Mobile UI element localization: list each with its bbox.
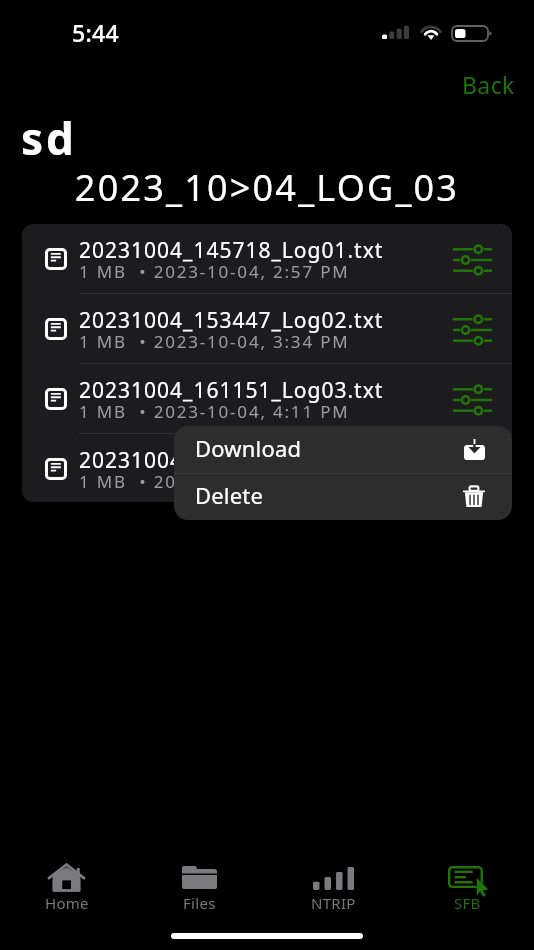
button[interactable]: File options: [446, 379, 498, 421]
staticText: 1 MB • 2023-10-04, 2:57 PM: [79, 260, 350, 283]
button[interactable]: 20231004_145718_Log01.txt: [22, 224, 512, 294]
button[interactable]: File options: [446, 449, 498, 491]
staticText: Home: [45, 893, 89, 913]
staticText: Files: [183, 893, 216, 913]
staticText: Download: [195, 433, 302, 463]
button[interactable]: 20231004_170245_Log04.txt: [22, 434, 512, 502]
staticText: Back: [462, 69, 515, 100]
staticText: 20231004_153447_Log02.txt: [79, 306, 384, 335]
button[interactable]: SFB: [400, 840, 534, 950]
staticText: sd: [21, 108, 77, 168]
button[interactable]: File options: [446, 239, 498, 281]
button[interactable]: Back: [448, 62, 528, 106]
staticText: 20231004_170245_Log04.txt: [79, 446, 384, 475]
staticText: 1 MB • 2023-10-04, 4:11 PM: [79, 400, 350, 423]
staticText: 2023_10>04_LOG_03: [0, 163, 534, 212]
button[interactable]: Delete: [174, 474, 512, 520]
button[interactable]: File options: [446, 309, 498, 351]
button[interactable]: Download: [174, 426, 512, 473]
staticText: 1 MB • 2023-10-04, 3:34 PM: [79, 330, 350, 353]
button[interactable]: NTRIP: [266, 840, 400, 950]
button[interactable]: 20231004_161151_Log03.txt: [22, 364, 512, 434]
staticText: 20231004_161151_Log03.txt: [79, 376, 384, 405]
staticText: Delete: [195, 480, 264, 510]
button[interactable]: 20231004_153447_Log02.txt: [22, 294, 512, 364]
button[interactable]: Files: [133, 840, 266, 950]
staticText: 1 MB • 2023-10-04, 5:02 PM: [79, 470, 350, 493]
staticText: NTRIP: [311, 893, 356, 913]
staticText: 20231004_145718_Log01.txt: [79, 236, 384, 265]
staticText: 5:44: [72, 17, 119, 48]
staticText: SFB: [454, 893, 481, 913]
button[interactable]: Home: [0, 840, 133, 950]
